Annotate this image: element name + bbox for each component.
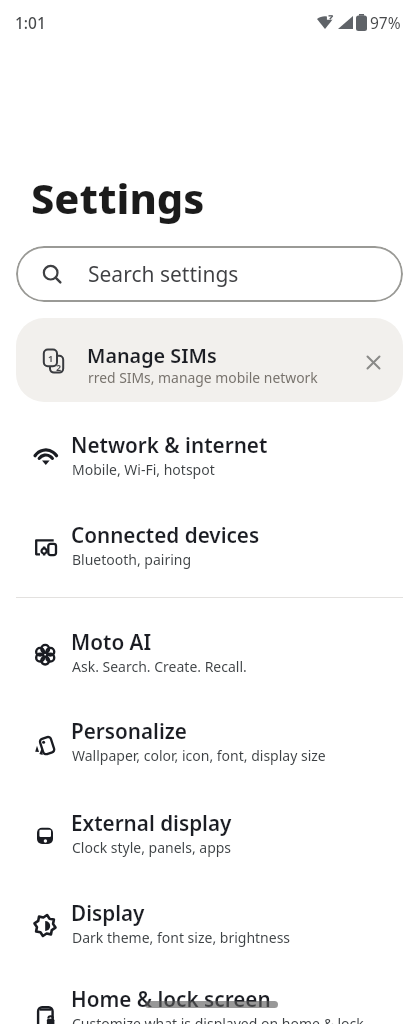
staticText: 1 [48, 352, 54, 364]
button[interactable]: 1 [16, 318, 403, 402]
staticText: Network & internet [71, 431, 268, 459]
staticText: Search settings [88, 260, 239, 289]
staticText: Moto AI [71, 628, 152, 656]
staticText: Dark theme, font size, brightness [72, 928, 291, 947]
staticText: Manage SIMs [87, 342, 217, 369]
staticText: Mobile, Wi-Fi, hotspot [72, 460, 215, 479]
button[interactable]: Connected devices [0, 513, 419, 593]
button[interactable]: Personalize [0, 709, 419, 789]
staticText: Personalize [71, 717, 187, 745]
staticText: Connected devices [71, 521, 260, 549]
staticText: 1:01 [15, 12, 46, 33]
staticText: Display [71, 899, 145, 927]
staticText: Wallpaper, color, icon, font, display si… [72, 746, 326, 765]
button[interactable]: Home & lock screen [0, 977, 419, 1024]
staticText: Bluetooth, pairing [72, 550, 192, 569]
staticText: Ask. Search. Create. Recall. [72, 657, 247, 676]
staticText: rred SIMs, manage mobile network [88, 368, 318, 387]
button[interactable]: Moto AI [0, 620, 419, 700]
staticText: Clock style, panels, apps [72, 838, 232, 857]
staticText: Settings [31, 170, 205, 227]
button[interactable] [356, 345, 390, 379]
staticText: Home & lock screen [71, 985, 271, 1013]
button[interactable]: Display [0, 891, 419, 971]
button[interactable]: Network & internet [0, 423, 419, 503]
staticText: Customize what is displayed on home & lo… [72, 1014, 364, 1024]
button[interactable]: External display [0, 801, 419, 881]
staticText: 2 [56, 361, 62, 373]
button[interactable]: Search settings [16, 246, 403, 302]
staticText: 97% [370, 12, 401, 33]
staticText: External display [71, 809, 232, 837]
